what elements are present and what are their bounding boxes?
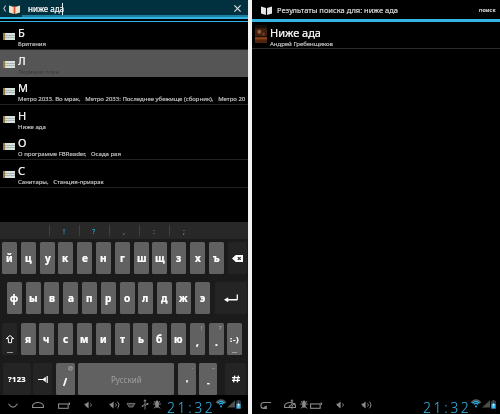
staticText: ниже ада — [28, 3, 65, 14]
button[interactable]: Keyboard settings — [225, 363, 246, 395]
staticText: ж — [179, 291, 188, 305]
staticText: Л — [18, 53, 26, 68]
button[interactable]: е — [77, 242, 92, 274]
button[interactable]: ! — [190, 323, 205, 355]
staticText: Н — [18, 108, 27, 123]
button[interactable]: Volume down — [332, 397, 350, 413]
button[interactable]: Б — [0, 22, 248, 50]
staticText: @ — [68, 364, 73, 371]
button[interactable]: в — [44, 282, 59, 314]
staticText: н — [100, 251, 107, 265]
button[interactable]: Back — [0, 2, 9, 15]
staticText: 21:32 — [423, 398, 472, 414]
button[interactable]: з — [171, 242, 186, 274]
button[interactable]: Volume up — [105, 397, 123, 413]
button[interactable]: р — [101, 282, 116, 314]
button[interactable]: Smiley — [227, 323, 242, 355]
button[interactable]: ы — [26, 282, 41, 314]
button[interactable]: ъ — [209, 242, 224, 274]
button[interactable]: Home — [281, 397, 299, 413]
staticText: – — [212, 364, 215, 371]
staticText: М — [18, 80, 28, 95]
button[interactable]: Русский — [78, 363, 174, 395]
button[interactable]: к — [58, 242, 73, 274]
button[interactable]: ф — [7, 282, 22, 314]
button[interactable]: ? — [79, 222, 109, 239]
button[interactable]: ; — [169, 222, 199, 239]
button[interactable]: б — [152, 323, 167, 355]
staticText: ?123 — [8, 374, 27, 384]
button[interactable]: а — [63, 282, 78, 314]
button[interactable]: Л — [0, 50, 248, 78]
button[interactable]: ю — [171, 323, 186, 355]
button[interactable]: у — [40, 242, 55, 274]
button[interactable]: Volume up — [357, 397, 375, 413]
button[interactable]: Ниже ада — [252, 22, 500, 48]
button[interactable]: Switch keyboard — [126, 399, 135, 410]
staticText: ? — [92, 226, 96, 236]
button[interactable]: Н — [0, 105, 248, 133]
button[interactable]: э — [195, 282, 210, 314]
staticText: й — [6, 251, 13, 265]
button[interactable]: Back — [256, 397, 274, 413]
button[interactable]: , — [109, 222, 139, 239]
button[interactable]: М — [0, 77, 248, 105]
button[interactable]: С — [0, 160, 248, 188]
button[interactable]: @ — [56, 363, 75, 395]
staticText: О — [18, 135, 27, 150]
button[interactable]: ? — [209, 323, 224, 355]
staticText: к — [62, 251, 69, 265]
button[interactable]: х — [190, 242, 205, 274]
button[interactable]: д — [157, 282, 172, 314]
button[interactable]: Volume down — [80, 397, 98, 413]
staticText: ц — [25, 251, 32, 265]
staticText: , — [123, 226, 126, 236]
button[interactable]: ь — [133, 323, 148, 355]
button[interactable]: Backspace — [228, 242, 247, 274]
staticText: б — [156, 332, 163, 346]
staticText: ; — [183, 226, 186, 236]
staticText: , — [196, 335, 199, 349]
button[interactable]: ж — [176, 282, 191, 314]
button[interactable]: Recent apps — [55, 397, 73, 413]
button[interactable]: о — [120, 282, 135, 314]
button[interactable]: щ — [152, 242, 167, 274]
button[interactable]: ц — [21, 242, 36, 274]
button[interactable]: м — [77, 323, 92, 355]
button[interactable]: · — [178, 363, 196, 395]
button[interactable]: ?123 — [3, 363, 31, 395]
button[interactable]: ч — [39, 323, 54, 355]
button[interactable]: Tab — [33, 363, 52, 395]
button[interactable]: и — [96, 323, 111, 355]
button[interactable]: й — [2, 242, 17, 274]
button[interactable]: : — [139, 222, 169, 239]
button[interactable]: с — [58, 323, 73, 355]
staticText: Санитары, Станция-призрак — [18, 178, 266, 186]
button[interactable]: Shift — [2, 323, 17, 355]
button[interactable]: – — [199, 363, 217, 395]
button[interactable]: поиск — [474, 2, 500, 17]
button[interactable]: ! — [49, 222, 79, 239]
staticText: : — [153, 226, 156, 236]
staticText: - — [207, 377, 210, 388]
button[interactable]: г — [115, 242, 130, 274]
button[interactable]: т — [115, 323, 130, 355]
button[interactable]: п — [82, 282, 97, 314]
staticText: д — [161, 291, 168, 305]
button[interactable]: О — [0, 132, 248, 160]
button[interactable]: Recent apps — [307, 397, 325, 413]
button[interactable]: я — [21, 323, 36, 355]
button[interactable]: Clear search — [230, 2, 244, 15]
staticText: ) — [236, 334, 239, 344]
staticText: - — [233, 334, 236, 344]
staticText: Результаты поиска для: ниже ада — [277, 5, 398, 15]
button[interactable]: ш — [134, 242, 149, 274]
button[interactable]: Enter — [215, 282, 247, 314]
button[interactable]: л — [138, 282, 153, 314]
staticText: о — [124, 291, 131, 305]
staticText: . — [215, 335, 218, 349]
button[interactable]: Hide keyboard — [4, 397, 22, 413]
staticText: а — [68, 291, 74, 305]
button[interactable]: н — [96, 242, 111, 274]
button[interactable]: Home — [29, 397, 47, 413]
